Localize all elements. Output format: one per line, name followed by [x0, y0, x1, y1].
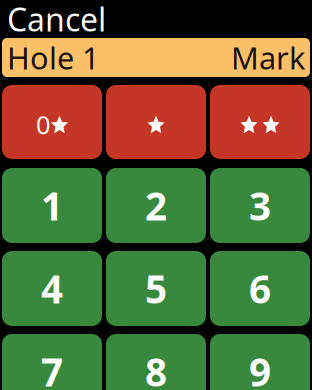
staticText: 1	[41, 180, 63, 231]
button[interactable]: 5	[106, 251, 206, 326]
button[interactable]: 4	[2, 251, 102, 326]
staticText: 6	[249, 263, 271, 314]
staticText: 2	[145, 180, 167, 231]
button[interactable]: One penalty stroke	[106, 85, 206, 159]
button[interactable]: Zero penalty	[2, 85, 102, 159]
staticText: 9	[249, 346, 271, 390]
button[interactable]: 1	[2, 168, 102, 243]
staticText: 4	[41, 263, 63, 314]
staticText: Cancel	[7, 0, 106, 40]
staticText: 0	[36, 108, 50, 141]
button[interactable]: 8	[106, 334, 206, 390]
button[interactable]: 3	[210, 168, 310, 243]
button[interactable]: 9	[210, 334, 310, 390]
staticText: 8	[145, 346, 167, 390]
staticText: 3	[249, 180, 271, 231]
button[interactable]: 7	[2, 334, 102, 390]
button[interactable]: Two penalty strokes	[210, 85, 310, 159]
staticText: 7	[41, 346, 63, 390]
staticText: 5	[145, 263, 167, 314]
button[interactable]: Cancel	[0, 0, 106, 44]
staticText: Hole 1	[7, 37, 100, 78]
button[interactable]: 6	[210, 251, 310, 326]
button[interactable]: Mark	[231, 37, 305, 78]
staticText: Mark	[231, 37, 305, 78]
button[interactable]: 2	[106, 168, 206, 243]
